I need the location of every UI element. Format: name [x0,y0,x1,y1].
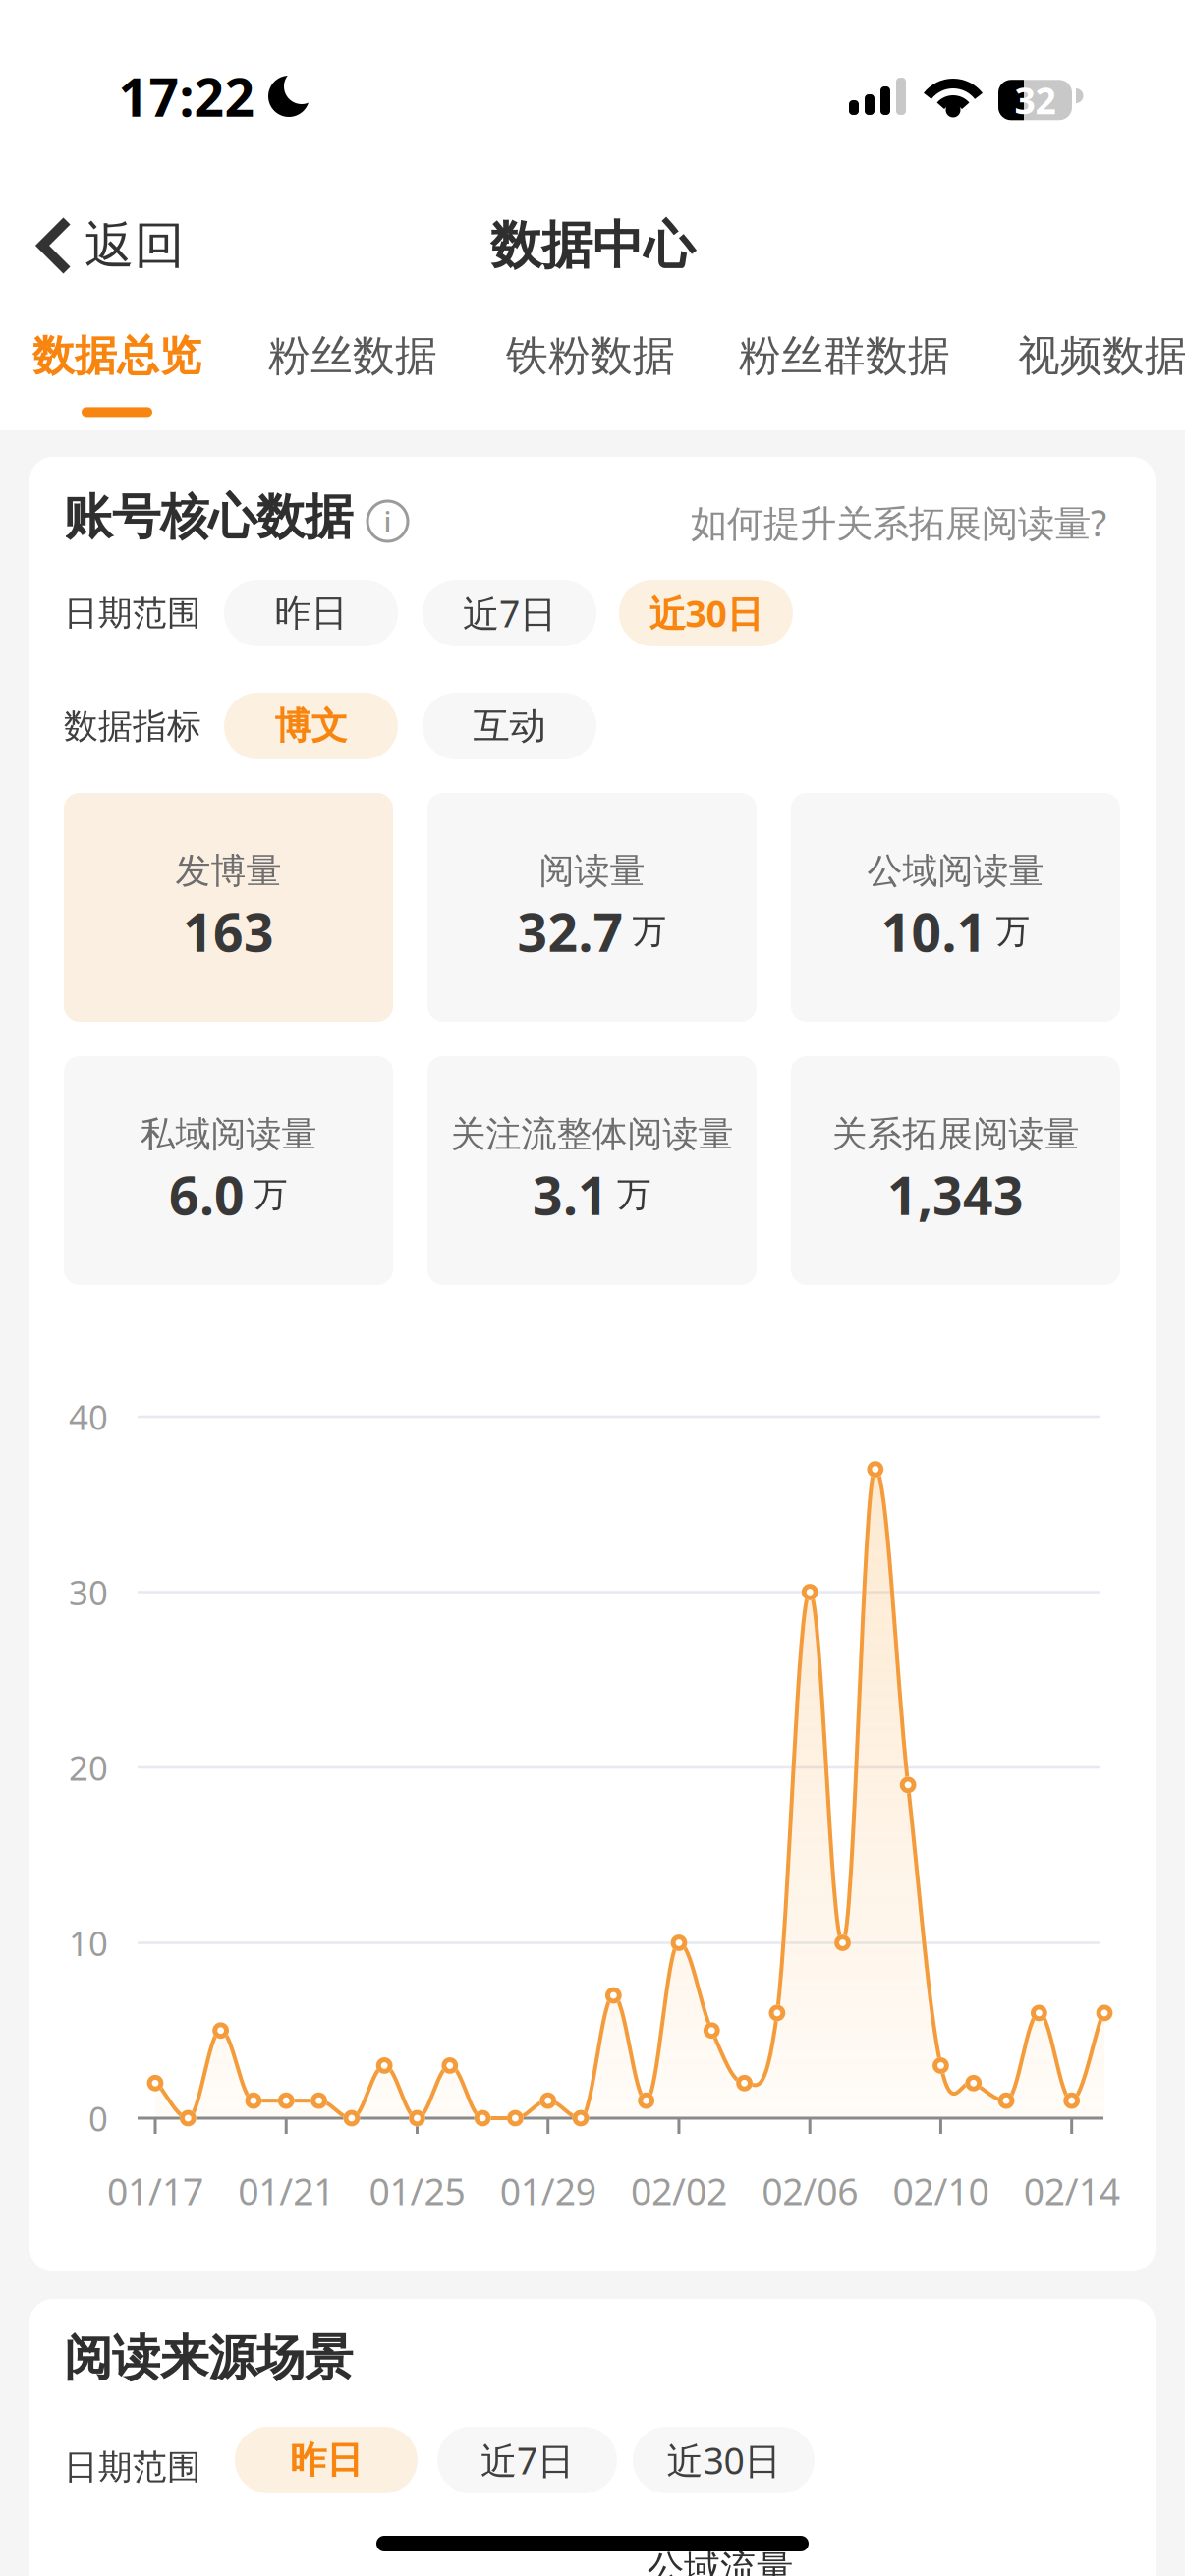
staticText: 数据指标 [64,705,201,747]
button[interactable]: 昨日 [235,2427,418,2493]
staticText: 博文 [275,704,347,749]
staticText: 昨日 [275,591,347,636]
staticText: 返回 [85,215,185,276]
staticText: 02/10 [893,2167,989,2215]
staticText: 01/29 [500,2167,596,2215]
staticText: 粉丝数据 [268,330,437,382]
staticText: 关系拓展阅读量 [832,1113,1079,1156]
staticText: 互动 [473,704,546,749]
button[interactable]: 昨日 [224,580,398,646]
staticText: 阅读量 [539,849,645,893]
staticText: 私域阅读量 [140,1113,317,1156]
button[interactable]: 发博量 [64,793,393,1022]
staticText: 万 [996,910,1030,952]
staticText: 铁粉数据 [506,330,675,382]
staticText: 公域流量 [648,2547,793,2576]
button[interactable]: 如何提升关系拓展阅读量? [29,498,1106,547]
button[interactable]: 粉丝数据 [268,330,437,382]
staticText: i [384,502,392,540]
staticText: 关注流整体阅读量 [451,1113,734,1156]
staticText: 40 [69,1394,108,1439]
staticText: 万 [254,1174,288,1216]
staticText: 02/06 [762,2167,858,2215]
button[interactable]: 关系拓展阅读量 [791,1056,1120,1285]
button[interactable]: 返回 [35,196,185,295]
button[interactable]: 博文 [224,693,398,759]
staticText: 30 [69,1569,108,1615]
staticText: 粉丝群数据 [739,330,950,382]
staticText: 01/21 [238,2167,334,2215]
staticText: 02/14 [1024,2167,1120,2215]
button[interactable]: 阅读量 [427,793,757,1022]
button[interactable]: 数据总览 [32,330,201,417]
staticText: 0 [88,2096,108,2141]
staticText: 10.1 [881,897,987,966]
staticText: 3.1 [533,1160,608,1229]
button[interactable]: 近7日 [423,580,596,646]
button[interactable]: 关注流整体阅读量 [427,1056,757,1285]
staticText: 昨日 [290,2438,363,2483]
staticText: 万 [617,1174,651,1216]
staticText: 10 [69,1920,108,1965]
staticText: 如何提升关系拓展阅读量? [691,498,1106,547]
staticText: 阅读来源场景 [64,2328,353,2388]
staticText: 20 [69,1745,108,1790]
staticText: 01/17 [107,2167,203,2215]
button[interactable]: 视频数据 [1018,330,1185,382]
staticText: 6.0 [169,1160,245,1229]
staticText: 近30日 [667,2436,781,2484]
button[interactable]: 近30日 [619,580,793,646]
staticText: 163 [183,897,274,966]
staticText: 数据总览 [32,330,201,382]
staticText: 17:22 [118,62,255,131]
button[interactable]: 互动 [423,693,596,759]
staticText: 近7日 [480,2436,574,2484]
button[interactable]: 公域阅读量 [791,793,1120,1022]
button[interactable]: 私域阅读量 [64,1056,393,1285]
staticText: 发博量 [175,849,282,893]
staticText: 日期范围 [64,592,201,634]
button[interactable]: i [366,499,410,543]
staticText: 02/02 [631,2167,727,2215]
button[interactable]: 近7日 [437,2427,617,2493]
staticText: 视频数据 [1018,330,1185,382]
button[interactable]: 粉丝群数据 [739,330,950,382]
staticText: 近7日 [463,589,556,637]
staticText: 近30日 [649,589,763,637]
staticText: 日期范围 [64,2446,201,2488]
staticText: 32.7 [517,897,623,966]
button[interactable]: 铁粉数据 [506,330,675,382]
button[interactable]: 近30日 [633,2427,815,2493]
staticText: 32 [1015,76,1056,124]
staticText: 数据中心 [490,214,695,277]
staticText: 账号核心数据 [64,487,353,547]
staticText: 01/25 [369,2167,465,2215]
staticText: 万 [632,910,667,952]
staticText: 1,343 [887,1160,1024,1229]
staticText: 公域阅读量 [867,849,1044,893]
